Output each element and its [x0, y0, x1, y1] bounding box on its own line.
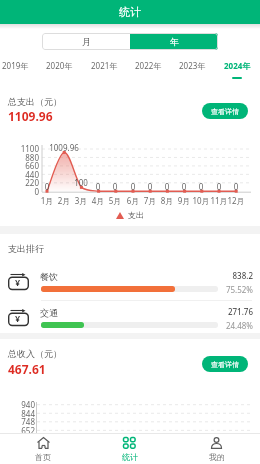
staticText: 交通 [40, 307, 58, 318]
staticText: 2019年 [2, 60, 29, 71]
staticText: 0 [97, 181, 133, 192]
staticText: 2月 [52, 195, 76, 206]
staticText: 0 [166, 181, 202, 192]
button[interactable]: 2022年 [128, 60, 168, 80]
staticText: 1109.96 [8, 108, 53, 124]
staticText: 0 [149, 181, 185, 192]
staticText: 440 [14, 169, 39, 180]
staticText: 0 [14, 186, 39, 197]
staticText: 838.2 [170, 270, 253, 281]
staticText: 9月 [172, 195, 196, 206]
staticText: 660 [14, 160, 39, 171]
button[interactable]: 月 [42, 33, 130, 50]
button[interactable]: 查看详情 [202, 356, 248, 372]
staticText: 2021年 [91, 60, 118, 71]
staticText: 2022年 [135, 60, 162, 71]
staticText: 748 [10, 416, 35, 427]
staticText: 0 [80, 181, 116, 192]
staticText: 880 [14, 152, 39, 163]
staticText: 11月 [207, 195, 231, 206]
staticText: 3月 [69, 195, 93, 206]
staticText: 0 [201, 181, 237, 192]
button[interactable]: 2021年 [84, 60, 124, 80]
button[interactable]: 统计 [86, 433, 173, 464]
staticText: 0 [183, 181, 219, 192]
staticText: 8月 [155, 195, 179, 206]
staticText: 10月 [189, 195, 213, 206]
button[interactable]: 2019年 [0, 60, 35, 80]
staticText: 0 [115, 181, 151, 192]
staticText: 餐饮 [40, 271, 58, 282]
button[interactable]: 我的 [173, 433, 260, 464]
staticText: 我的 [209, 452, 225, 462]
staticText: 271.76 [170, 306, 253, 317]
staticText: 75.52% [200, 284, 253, 295]
button[interactable]: 查看详情 [202, 103, 248, 119]
button[interactable]: 首页 [0, 433, 86, 464]
staticText: 940 [10, 399, 35, 410]
staticText: 844 [10, 408, 35, 419]
staticText: ¥ [15, 312, 21, 324]
staticText: 统计 [119, 5, 141, 19]
button[interactable]: ¥ [0, 304, 260, 336]
staticText: 支出 [128, 210, 144, 220]
staticText: 月 [82, 36, 91, 47]
staticText: 1月 [35, 195, 59, 206]
button[interactable]: 年 [130, 33, 218, 50]
button[interactable]: 2023年 [172, 60, 212, 80]
staticText: 4月 [86, 195, 110, 206]
staticText: 652 [10, 425, 35, 436]
staticText: 首页 [35, 452, 51, 462]
staticText: 12月 [224, 195, 248, 206]
staticText: 总收入（元） [8, 348, 62, 359]
button[interactable]: ¥ [0, 268, 260, 300]
staticText: 2023年 [179, 60, 206, 71]
button[interactable]: 2024年 [217, 60, 257, 80]
staticText: 5月 [103, 195, 127, 206]
staticText: 1009.96 [46, 142, 82, 153]
staticText: 2024年 [224, 60, 251, 71]
staticText: 1100 [14, 143, 39, 154]
button[interactable]: 2020年 [39, 60, 79, 80]
staticText: 0 [218, 181, 254, 192]
staticText: 查看详情 [211, 107, 239, 116]
staticText: 6月 [121, 195, 145, 206]
staticText: 0 [132, 181, 168, 192]
staticText: 查看详情 [211, 360, 239, 369]
staticText: 100 [63, 177, 99, 188]
staticText: 统计 [122, 452, 138, 462]
staticText: ¥ [15, 276, 21, 288]
staticText: 24.48% [200, 320, 253, 331]
staticText: 支出排行 [8, 243, 44, 254]
staticText: 总支出（元） [8, 96, 62, 107]
staticText: 2020年 [46, 60, 73, 71]
staticText: 7月 [138, 195, 162, 206]
staticText: 220 [14, 177, 39, 188]
staticText: 467.61 [8, 361, 46, 377]
staticText: 年 [170, 36, 179, 47]
staticText: 0 [29, 181, 65, 192]
